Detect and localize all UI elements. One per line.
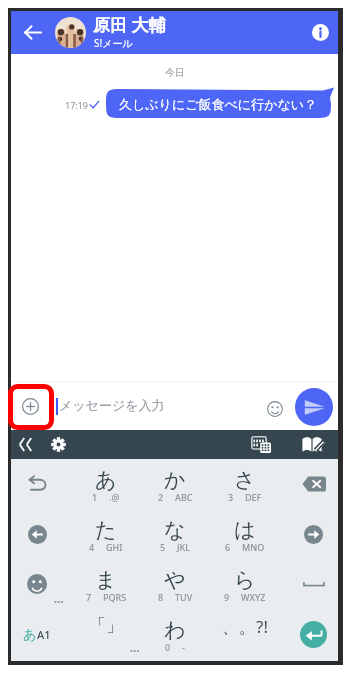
button[interactable]: 久しぶりにご飯食べに行かない？ [106, 89, 331, 118]
button[interactable]: た [74, 509, 138, 559]
staticText: 9 [224, 591, 230, 603]
button[interactable]: あ [74, 459, 138, 509]
staticText: 2 [158, 491, 164, 503]
button[interactable]: Back [18, 18, 47, 47]
staticText: 4 [89, 541, 95, 553]
staticText: わ [164, 617, 186, 643]
staticText: GHI [106, 541, 123, 553]
staticText: な [164, 517, 186, 543]
staticText: ま [95, 567, 117, 593]
staticText: A1 [37, 627, 51, 642]
button[interactable]: Emoji and symbols [11, 559, 63, 609]
button[interactable]: Dictionary [299, 431, 325, 457]
staticText: TUV [175, 591, 193, 603]
staticText: 今日 [165, 66, 185, 79]
staticText: あ [23, 626, 37, 642]
button[interactable]: や [143, 559, 207, 609]
staticText: DEF [245, 491, 262, 503]
staticText: 、。?! [222, 615, 268, 638]
staticText: 原田 大輔 [93, 13, 166, 36]
button[interactable]: 「」 [74, 609, 138, 659]
button[interactable]: ら [213, 559, 277, 609]
button[interactable]: わ [143, 609, 207, 659]
staticText: 6 [225, 541, 231, 553]
button[interactable]: Add attachment [14, 390, 47, 423]
button[interactable]: さ [213, 459, 277, 509]
staticText: 17:19 [65, 99, 89, 111]
button[interactable]: Send [295, 388, 333, 426]
staticText: MNO [242, 541, 265, 553]
staticText: S!メール [94, 36, 133, 50]
staticText: 1 [92, 491, 98, 503]
staticText: ABC [175, 491, 193, 503]
staticText: や [164, 567, 186, 593]
button[interactable]: Move cursor left [11, 509, 63, 559]
staticText: 5 [160, 541, 166, 553]
staticText: あ [95, 467, 117, 493]
staticText: 「」 [89, 615, 123, 636]
staticText: た [95, 517, 117, 543]
staticText: 0 [165, 641, 171, 653]
staticText: PQRS [103, 591, 127, 603]
button[interactable]: Keyboard settings [45, 431, 71, 457]
staticText: .@ [109, 491, 120, 503]
button[interactable]: Backspace [288, 459, 339, 509]
button[interactable]: Move cursor right [288, 509, 339, 559]
staticText: JKL [177, 541, 191, 553]
staticText: - [182, 641, 185, 653]
button[interactable]: Hide keyboard [12, 431, 38, 457]
button[interactable]: は [213, 509, 277, 559]
staticText: 3 [228, 491, 234, 503]
staticText: さ [234, 467, 256, 493]
button[interactable]: Undo [11, 459, 63, 509]
button[interactable]: Conversation info [305, 17, 336, 48]
staticText: か [164, 467, 186, 493]
button[interactable]: Space [288, 559, 339, 609]
staticText: 7 [86, 591, 92, 603]
staticText: 久しぶりにご飯食べに行かない？ [119, 96, 318, 112]
button[interactable]: な [143, 509, 207, 559]
button[interactable]: Switch keypad layout [248, 431, 274, 457]
staticText: 8 [158, 591, 164, 603]
staticText: は [234, 517, 256, 543]
staticText: WXYZ [241, 591, 266, 603]
button[interactable]: Enter [288, 609, 339, 659]
button[interactable]: 、。?! [213, 609, 277, 659]
staticText: メッセージを入力 [59, 397, 165, 413]
button[interactable]: か [143, 459, 207, 509]
button[interactable]: Emoji [260, 394, 290, 424]
button[interactable]: Switch input mode [11, 609, 63, 659]
button[interactable]: ま [74, 559, 138, 609]
staticText: ら [234, 567, 256, 593]
